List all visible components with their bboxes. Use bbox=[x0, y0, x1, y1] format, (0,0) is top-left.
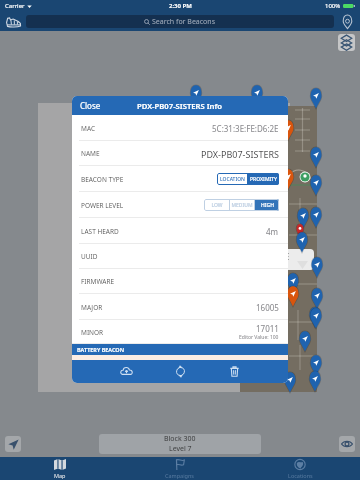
staticText: Close bbox=[80, 100, 101, 111]
staticText: PROXIMITY bbox=[250, 176, 277, 183]
staticText: BEACON TYPE bbox=[81, 175, 124, 184]
staticText: 4m bbox=[266, 226, 279, 237]
button[interactable]: Refresh bbox=[153, 360, 207, 383]
staticText: 5C:31:3E:FE:D6:2E bbox=[212, 123, 279, 134]
button[interactable]: Close bbox=[72, 96, 109, 115]
button[interactable]: Map bbox=[0, 457, 120, 480]
button[interactable]: Brand bbox=[4, 13, 22, 31]
staticText: LOW bbox=[211, 202, 223, 209]
staticText: MEDIUM bbox=[231, 202, 253, 209]
button[interactable]: Search for Beacons bbox=[26, 15, 334, 28]
staticText: Level 7 bbox=[169, 444, 192, 454]
staticText: Carrier bbox=[5, 2, 25, 10]
button[interactable]: HIGH bbox=[255, 199, 279, 211]
button[interactable]: MEDIUM bbox=[230, 199, 254, 211]
staticText: LOCATION bbox=[220, 176, 245, 183]
button[interactable]: My location bbox=[338, 13, 356, 31]
staticText: PDX-PB07-SISTERS Info bbox=[137, 101, 223, 111]
staticText: LAST HEARD bbox=[81, 227, 119, 236]
staticText: Editor Value: 100 bbox=[239, 334, 279, 341]
button[interactable]: Visibility bbox=[339, 436, 355, 452]
button[interactable]: Block 300 bbox=[99, 434, 261, 454]
staticText: NAME bbox=[81, 149, 100, 158]
button[interactable]: PROXIMITY bbox=[248, 173, 279, 185]
button[interactable]: Upload bbox=[99, 360, 153, 383]
staticText: POWER LEVEL bbox=[81, 201, 124, 210]
staticText: RS bbox=[265, 262, 273, 270]
staticText: MAJOR bbox=[81, 303, 103, 312]
staticText: D6:2E bbox=[265, 250, 290, 262]
button[interactable]: BATTERY BEACON bbox=[72, 344, 288, 355]
staticText: 2:30 PM bbox=[169, 2, 192, 10]
staticText: Campaigns bbox=[165, 472, 195, 479]
button[interactable]: Delete bbox=[207, 360, 261, 383]
button[interactable]: Locate me bbox=[5, 436, 21, 452]
staticText: FIRMWARE bbox=[81, 277, 115, 286]
staticText: HIGH bbox=[261, 202, 274, 209]
staticText: 16005 bbox=[256, 302, 279, 313]
button[interactable]: Campaigns bbox=[120, 457, 240, 480]
button[interactable]: Map layers bbox=[338, 34, 355, 51]
staticText: 17011 bbox=[256, 323, 279, 334]
staticText: PDX-PB07-SISTERS bbox=[201, 148, 279, 160]
staticText: UUID bbox=[81, 252, 98, 261]
staticText: Locations bbox=[288, 472, 313, 479]
staticText: BATTERY BEACON bbox=[77, 346, 125, 353]
staticText: MAC bbox=[81, 124, 96, 133]
staticText: Block 300 bbox=[164, 434, 196, 444]
button[interactable]: LOW bbox=[204, 199, 229, 211]
button[interactable]: LOCATION bbox=[217, 173, 247, 185]
button[interactable]: Locations bbox=[240, 457, 360, 480]
staticText: Map bbox=[54, 472, 66, 479]
staticText: MINOR bbox=[81, 328, 104, 337]
staticText: Search for Beacons bbox=[152, 17, 216, 27]
staticText: 100% bbox=[325, 2, 341, 10]
